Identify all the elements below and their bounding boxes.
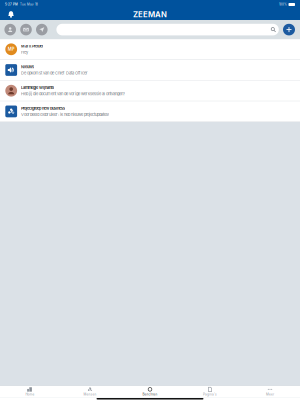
staticText: ZEEMAN (133, 10, 167, 19)
staticText: De opkomst van de Chief Data Officer (21, 71, 88, 75)
staticText: Voorbeeld Gebruiker: ik heb nieuwe proje… (21, 112, 109, 117)
button[interactable]: Mensen (60, 386, 120, 397)
button[interactable]: Search (56, 24, 279, 35)
staticText: Lammegje Wijnants (21, 85, 54, 90)
staticText: Heb jij die document van de vorige werks… (21, 91, 125, 96)
button[interactable]: Berichten (120, 386, 180, 397)
staticText: Nieuws (21, 64, 34, 69)
button[interactable]: Send (36, 24, 48, 35)
staticText: Berichten (142, 393, 157, 396)
staticText: Meer (266, 393, 274, 396)
button[interactable]: Profile (4, 24, 16, 35)
staticText: Marit Preibel (21, 44, 43, 48)
staticText: 100% (279, 3, 287, 6)
button[interactable]: Pagina's (180, 386, 240, 397)
button[interactable]: Notifications (4, 9, 18, 20)
button[interactable]: Nieuws (0, 60, 300, 81)
staticText: Projectgroep new business (21, 106, 65, 111)
staticText: Mensen (83, 393, 96, 396)
staticText: MP (8, 47, 15, 52)
button[interactable]: New message (283, 24, 295, 35)
button[interactable]: Projectgroep new business (0, 101, 300, 122)
staticText: Tue May 18 (18, 3, 38, 6)
button[interactable]: MP (0, 39, 300, 60)
staticText: Home (25, 393, 34, 396)
staticText: Hey (21, 50, 28, 55)
button[interactable]: Mail (20, 24, 32, 35)
button[interactable]: Meer (240, 386, 300, 397)
staticText: 5:27 PM (5, 3, 18, 6)
staticText: Pagina's (203, 393, 217, 396)
button[interactable]: Home (0, 386, 60, 397)
button[interactable]: Lammegje Wijnants (0, 81, 300, 101)
